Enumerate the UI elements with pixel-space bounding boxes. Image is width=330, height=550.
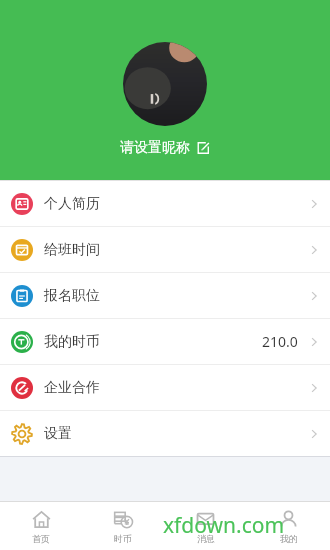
- button[interactable]: 时币: [82, 502, 164, 550]
- button[interactable]: 给班时间: [0, 227, 330, 272]
- button[interactable]: 消息: [164, 502, 247, 550]
- button[interactable]: 我的时币: [0, 319, 330, 364]
- staticText: 我的时币: [44, 333, 100, 351]
- button[interactable]: 首页: [0, 502, 82, 550]
- button[interactable]: 我的: [247, 502, 330, 550]
- staticText: 我的: [280, 533, 298, 544]
- staticText: 消息: [197, 533, 215, 544]
- button[interactable]: 请设置昵称: [114, 137, 216, 159]
- staticText: xfdown.com: [163, 511, 285, 540]
- staticText: 首页: [32, 533, 50, 544]
- button[interactable]: 个人简历: [0, 181, 330, 226]
- staticText: 请设置昵称: [120, 139, 190, 157]
- staticText: 给班时间: [44, 241, 100, 259]
- staticText: 企业合作: [44, 379, 100, 397]
- button[interactable]: Avatar: [123, 42, 207, 126]
- staticText: 个人简历: [44, 195, 100, 213]
- button[interactable]: 设置: [0, 411, 330, 456]
- staticText: 210.0: [262, 332, 298, 351]
- staticText: 时币: [114, 533, 132, 544]
- button[interactable]: 报名职位: [0, 273, 330, 318]
- staticText: 设置: [44, 425, 72, 443]
- button[interactable]: 企业合作: [0, 365, 330, 410]
- staticText: 报名职位: [44, 287, 100, 305]
